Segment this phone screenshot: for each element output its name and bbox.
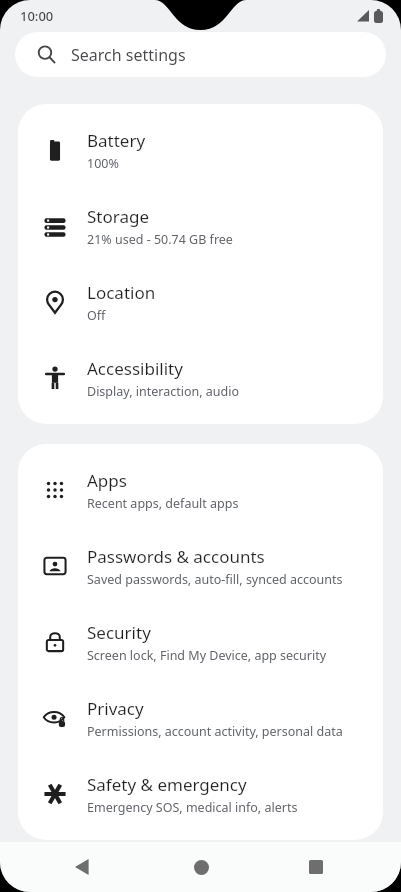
button[interactable]: Safety & emergency [18,756,383,832]
button[interactable]: Accessibility [18,340,383,416]
staticText: 10:00 [20,7,54,25]
staticText: Off [87,307,106,324]
button[interactable]: Search settings [15,32,386,77]
button[interactable]: Recent apps [301,852,331,882]
staticText: Storage [87,205,150,228]
staticText: 21% used - 50.74 GB free [87,231,233,248]
staticText: Emergency SOS, medical info, alerts [87,799,298,816]
staticText: Privacy [87,697,144,720]
button[interactable]: Home [184,850,218,884]
staticText: Search settings [71,44,186,66]
staticText: Accessibility [87,357,183,380]
staticText: Recent apps, default apps [87,495,239,512]
staticText: Safety & emergency [87,773,247,796]
staticText: Passwords & accounts [87,545,265,568]
button[interactable]: Passwords & accounts [18,528,383,604]
staticText: 100% [87,155,119,172]
button[interactable]: Security [18,604,383,680]
staticText: Apps [87,469,127,492]
button[interactable]: Privacy [18,680,383,756]
button[interactable]: Battery [18,112,383,188]
staticText: Saved passwords, auto-fill, synced accou… [87,571,343,588]
staticText: Security [87,621,151,644]
staticText: Battery [87,129,146,152]
staticText: Permissions, account activity, personal … [87,723,343,740]
button[interactable]: Back [68,852,98,882]
staticText: Display, interaction, audio [87,383,240,400]
button[interactable]: Location [18,264,383,340]
button[interactable]: Apps [18,452,383,528]
staticText: Screen lock, Find My Device, app securit… [87,647,327,664]
staticText: Location [87,281,156,304]
button[interactable]: Storage [18,188,383,264]
